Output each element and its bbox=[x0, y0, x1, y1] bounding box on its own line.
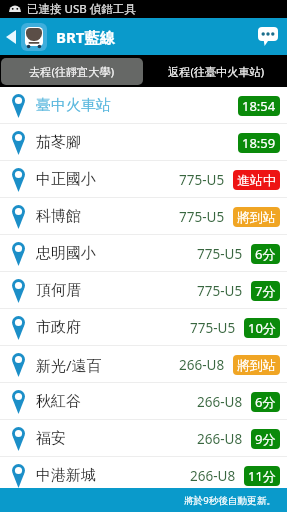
button[interactable]: 中正國小 bbox=[0, 161, 287, 198]
button[interactable]: 去程(往靜宜大學) bbox=[1, 58, 143, 85]
staticText: 266-U8 bbox=[197, 430, 243, 448]
staticText: 6分 bbox=[255, 393, 276, 411]
staticText: 18:59 bbox=[242, 134, 276, 152]
button[interactable]: 返程(往臺中火車站) bbox=[146, 58, 287, 85]
button[interactable]: 茄苳腳 bbox=[0, 124, 287, 161]
staticText: 福安 bbox=[36, 429, 66, 448]
staticText: 科博館 bbox=[36, 207, 81, 226]
staticText: 返程(往臺中火車站) bbox=[168, 64, 265, 79]
staticText: 臺中火車站 bbox=[36, 96, 111, 115]
staticText: 進站中 bbox=[237, 172, 276, 188]
button[interactable]: 秋紅谷 bbox=[0, 383, 287, 420]
staticText: 將到站 bbox=[237, 357, 276, 373]
staticText: 266-U8 bbox=[179, 356, 225, 374]
staticText: 頂何厝 bbox=[36, 281, 81, 300]
staticText: 266-U8 bbox=[197, 393, 243, 411]
staticText: 9分 bbox=[255, 430, 276, 448]
button[interactable]: 忠明國小 bbox=[0, 235, 287, 272]
button[interactable]: 科博館 bbox=[0, 198, 287, 235]
staticText: 去程(往靜宜大學) bbox=[29, 64, 115, 79]
staticText: 775-U5 bbox=[197, 245, 243, 263]
button[interactable]: 市政府 bbox=[0, 309, 287, 346]
staticText: 6分 bbox=[255, 245, 276, 263]
staticText: 18:54 bbox=[242, 97, 276, 115]
staticText: 中港新城 bbox=[36, 466, 96, 485]
staticText: 秋紅谷 bbox=[36, 392, 81, 411]
staticText: 775-U5 bbox=[179, 171, 225, 189]
staticText: 11分 bbox=[248, 467, 276, 485]
staticText: 775-U5 bbox=[179, 208, 225, 226]
staticText: 將到站 bbox=[237, 209, 276, 225]
staticText: 266-U8 bbox=[190, 467, 236, 485]
staticText: BRT藍線 bbox=[56, 27, 115, 47]
button[interactable]: 臺中火車站 bbox=[0, 87, 287, 124]
button[interactable]: Messages bbox=[249, 18, 287, 55]
staticText: 將於9秒後自動更新。 bbox=[184, 494, 276, 507]
button[interactable]: 新光/遠百 bbox=[0, 346, 287, 383]
button[interactable]: 福安 bbox=[0, 420, 287, 457]
button[interactable]: 頂何厝 bbox=[0, 272, 287, 309]
staticText: 新光/遠百 bbox=[36, 355, 102, 375]
staticText: 775-U5 bbox=[197, 282, 243, 300]
button[interactable]: 中港新城 bbox=[0, 457, 287, 494]
staticText: 7分 bbox=[255, 282, 276, 300]
staticText: 10分 bbox=[248, 319, 276, 337]
staticText: 已連接 USB 偵錯工具 bbox=[27, 1, 136, 17]
button[interactable]: Back bbox=[0, 18, 21, 55]
staticText: 市政府 bbox=[36, 318, 81, 337]
staticText: 忠明國小 bbox=[36, 244, 96, 263]
staticText: 775-U5 bbox=[190, 319, 236, 337]
staticText: 中正國小 bbox=[36, 170, 96, 189]
staticText: 茄苳腳 bbox=[36, 133, 81, 152]
